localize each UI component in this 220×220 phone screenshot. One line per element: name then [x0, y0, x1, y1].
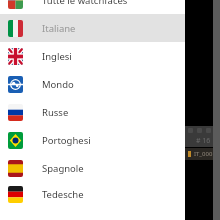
staticText: Russe	[42, 106, 69, 119]
button[interactable]: Inglesi	[0, 42, 185, 70]
button[interactable]: Spagnole	[0, 154, 185, 182]
staticText: IT_0009	[194, 150, 213, 158]
staticText: Inglesi	[42, 50, 72, 63]
staticText: # 16	[196, 136, 211, 146]
staticText: Tutte le watchfaces	[42, 0, 128, 7]
button[interactable]: Portoghesi	[0, 126, 185, 154]
button[interactable]: Italiane	[0, 14, 185, 42]
staticText: Spagnole	[42, 162, 84, 175]
button[interactable]: Mondo	[0, 70, 185, 98]
staticText: Italiane	[42, 22, 76, 35]
button[interactable]: Tutte le watchfaces	[0, 0, 185, 14]
button[interactable]: Language tag	[185, 148, 213, 160]
button[interactable]: Tedesche	[0, 182, 185, 206]
staticText: Mondo	[42, 78, 74, 91]
staticText: Portoghesi	[42, 134, 91, 147]
button[interactable]: Russe	[0, 98, 185, 126]
staticText: Tedesche	[42, 188, 84, 201]
